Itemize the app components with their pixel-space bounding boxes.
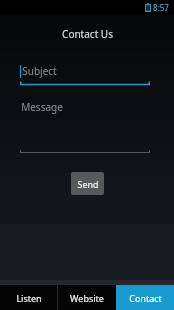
staticText: Contact Us [62, 27, 113, 41]
button[interactable]: Message [0, 98, 174, 154]
staticText: 8:57 [153, 2, 169, 13]
staticText: Message [21, 100, 63, 114]
staticText: Listen [16, 292, 42, 304]
staticText: Send [77, 178, 99, 190]
other: Battery [145, 3, 151, 12]
staticText: Subject [22, 64, 57, 78]
button[interactable]: Subject [0, 62, 174, 86]
staticText: Contact [129, 292, 162, 304]
button[interactable]: Website [58, 285, 116, 310]
button[interactable]: Contact [116, 285, 174, 310]
button[interactable]: Listen [0, 285, 57, 310]
staticText: Website [70, 292, 104, 304]
button[interactable]: Send [71, 172, 104, 195]
